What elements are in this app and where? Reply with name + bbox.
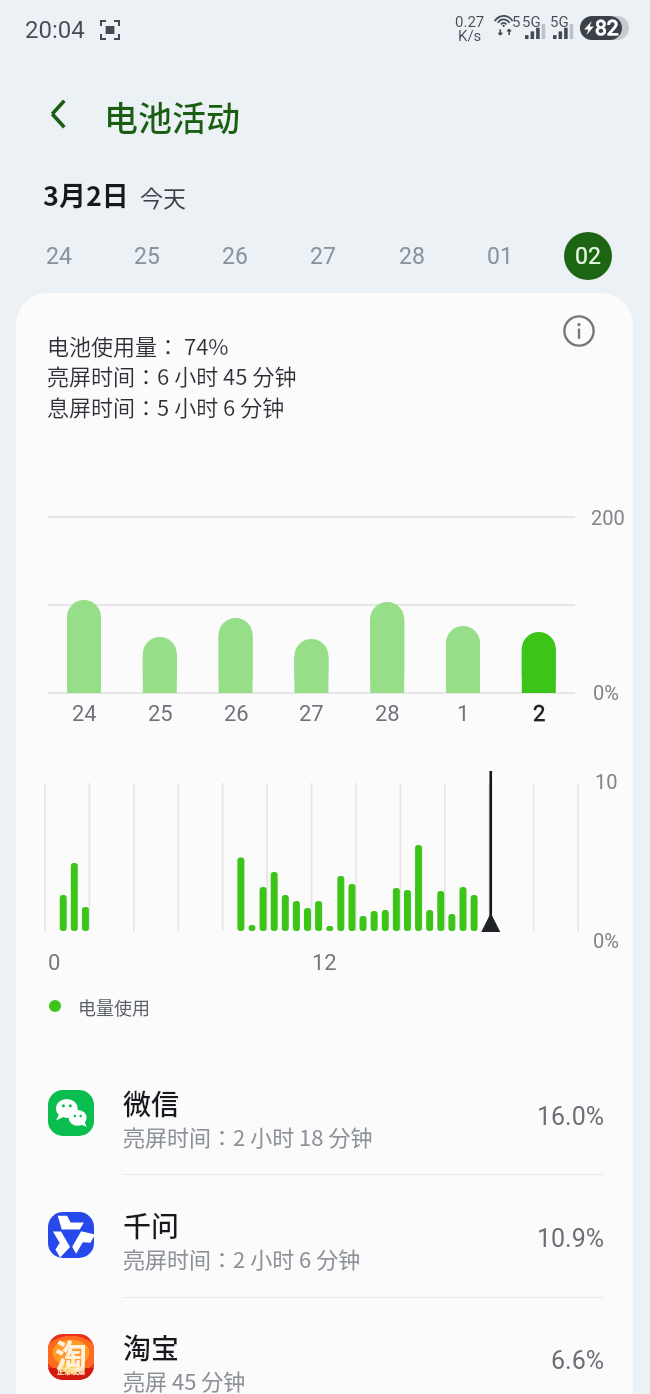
staticText: 亮屏 45 分钟 — [123, 1364, 246, 1394]
staticText: 电池活动 — [104, 92, 240, 141]
staticText: 淘宝 — [123, 1327, 180, 1368]
button[interactable]: 01 — [476, 232, 524, 280]
staticText: 27 — [299, 701, 324, 727]
staticText: 02 — [575, 243, 601, 270]
button[interactable]: 27 — [299, 232, 347, 280]
staticText: 淘 — [55, 1334, 88, 1377]
staticText: 3月2日 — [43, 175, 129, 214]
staticText: 28 — [399, 243, 425, 270]
staticText: 26 — [224, 701, 249, 727]
staticText: 5 — [512, 13, 521, 31]
staticText: 10.9% — [537, 1224, 605, 1253]
button[interactable]: 26 — [211, 232, 259, 280]
staticText: 0% — [593, 929, 619, 952]
staticText: 1 — [457, 701, 470, 727]
staticText: 5G — [522, 13, 541, 31]
staticText: 200 — [591, 506, 625, 529]
staticText: 25 — [148, 701, 173, 727]
staticText: 今天 — [140, 180, 186, 213]
button[interactable]: Back — [36, 92, 80, 136]
staticText: 正常晚爆 — [57, 1366, 85, 1376]
staticText: 24 — [46, 243, 72, 270]
button[interactable]: 千问 — [16, 1175, 633, 1297]
button[interactable]: 25 — [123, 232, 171, 280]
button[interactable]: Info — [555, 307, 603, 355]
button[interactable]: 02 — [564, 232, 612, 280]
button[interactable]: 28 — [388, 232, 436, 280]
staticText: 5G — [550, 13, 569, 31]
staticText: 电量使用 — [78, 994, 150, 1020]
staticText: 25 — [134, 243, 160, 270]
staticText: K/s — [458, 27, 482, 45]
staticText: 20:04 — [25, 16, 85, 44]
staticText: 01 — [487, 243, 513, 270]
staticText: 10 — [595, 770, 618, 793]
staticText: 28 — [375, 701, 400, 727]
staticText: 亮屏时间：2 小时 18 分钟 — [123, 1120, 373, 1152]
staticText: 2 — [533, 701, 546, 727]
staticText: 微信 — [123, 1083, 180, 1124]
staticText: 26 — [222, 243, 248, 270]
staticText: 亮屏时间：6 小时 45 分钟 — [47, 359, 297, 391]
staticText: 6.6% — [551, 1346, 605, 1375]
button[interactable]: 24 — [35, 232, 83, 280]
staticText: 27 — [310, 243, 336, 270]
staticText: 千问 — [123, 1205, 180, 1246]
button[interactable]: 淘 — [16, 1297, 633, 1394]
staticText: 亮屏时间：2 小时 6 分钟 — [123, 1242, 361, 1274]
staticText: 0% — [593, 681, 619, 704]
staticText: 24 — [72, 701, 97, 727]
staticText: 12 — [312, 950, 337, 976]
staticText: 息屏时间：5 小时 6 分钟 — [47, 390, 285, 422]
staticText: 82 — [595, 16, 619, 40]
staticText: 16.0% — [537, 1102, 605, 1131]
button[interactable]: 微信 — [16, 1053, 633, 1175]
staticText: 0 — [48, 950, 61, 976]
staticText: 0.27 — [455, 13, 485, 31]
staticText: 电池使用量： 74% — [47, 329, 229, 361]
